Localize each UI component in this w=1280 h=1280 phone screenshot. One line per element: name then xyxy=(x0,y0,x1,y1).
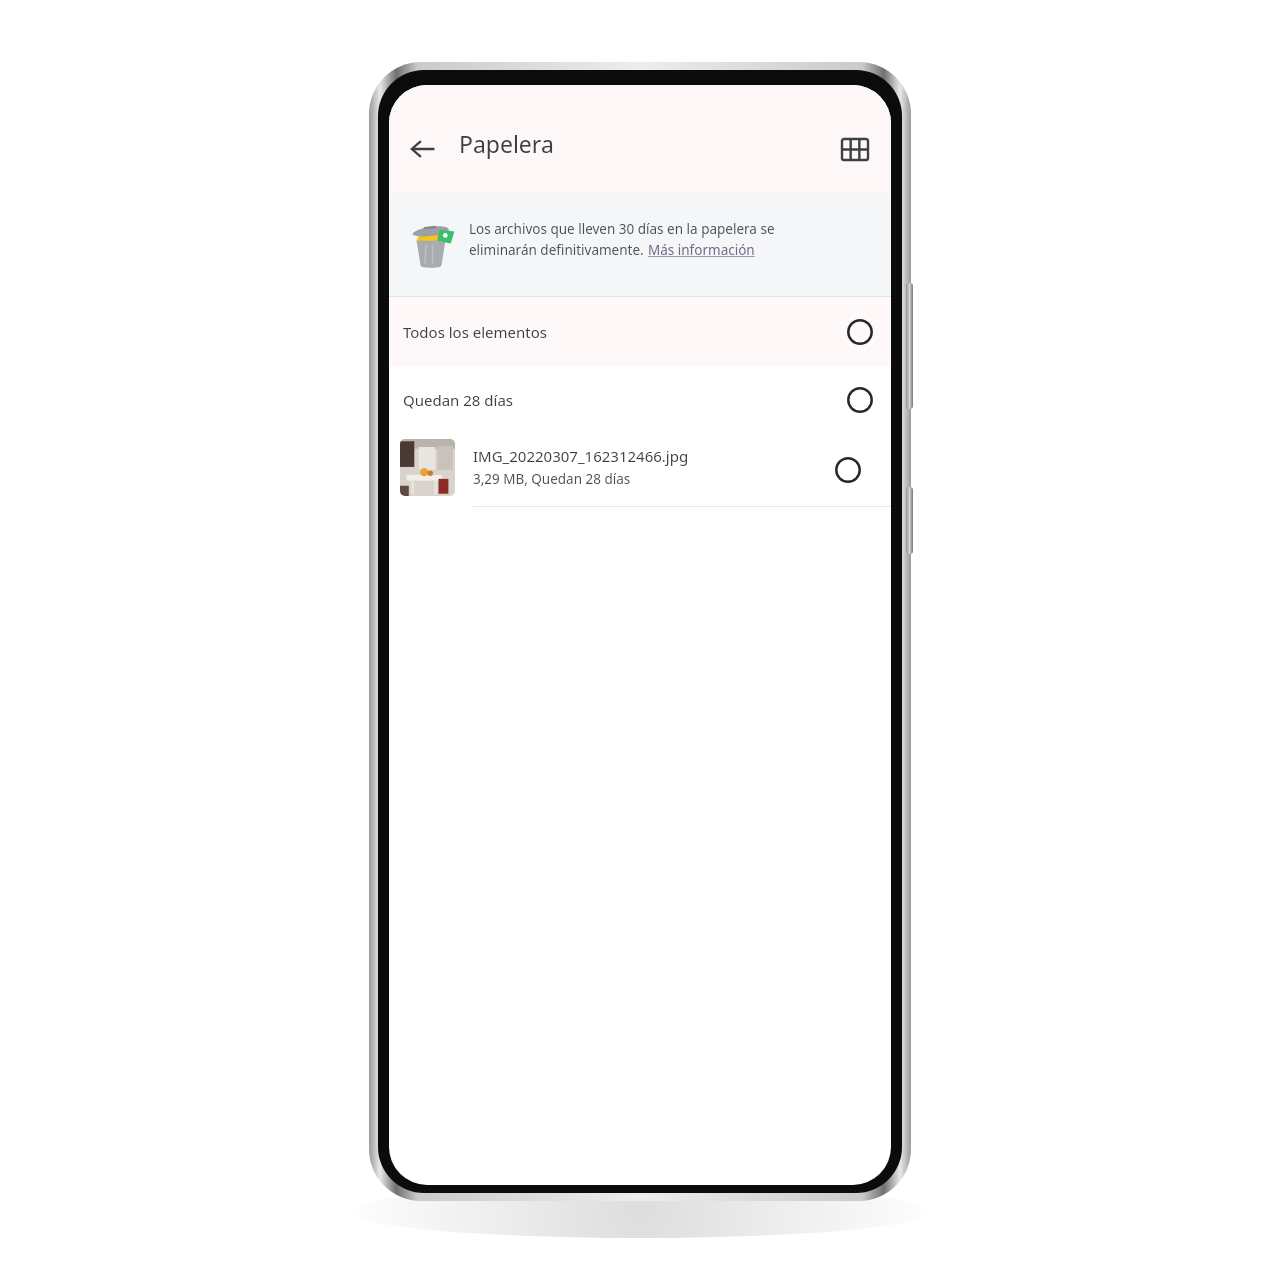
staticText: eliminarán definitivamente. xyxy=(469,241,648,259)
button[interactable]: Más información xyxy=(648,241,755,259)
button[interactable]: Todos los elementos xyxy=(389,297,891,367)
staticText: 3,29 MB, Quedan 28 días xyxy=(473,470,631,488)
staticText: Papelera xyxy=(459,128,554,159)
button[interactable]: Select Todos los elementos xyxy=(845,317,875,347)
staticText: Todos los elementos xyxy=(403,322,548,342)
button[interactable]: Select item xyxy=(833,455,863,485)
staticText: IMG_20220307_162312466.jpg xyxy=(473,446,689,466)
staticText: Los archivos que lleven 30 días en la pa… xyxy=(469,220,775,238)
staticText: Quedan 28 días xyxy=(403,390,514,410)
button[interactable]: Select Quedan 28 días xyxy=(845,385,875,415)
button[interactable]: Quedan 28 días xyxy=(389,367,891,433)
button[interactable]: IMG_20220307_162312466.jpg xyxy=(389,433,891,507)
staticText: Más información xyxy=(648,241,755,259)
button[interactable]: Grid view xyxy=(829,123,881,175)
button[interactable]: Back xyxy=(397,123,449,175)
